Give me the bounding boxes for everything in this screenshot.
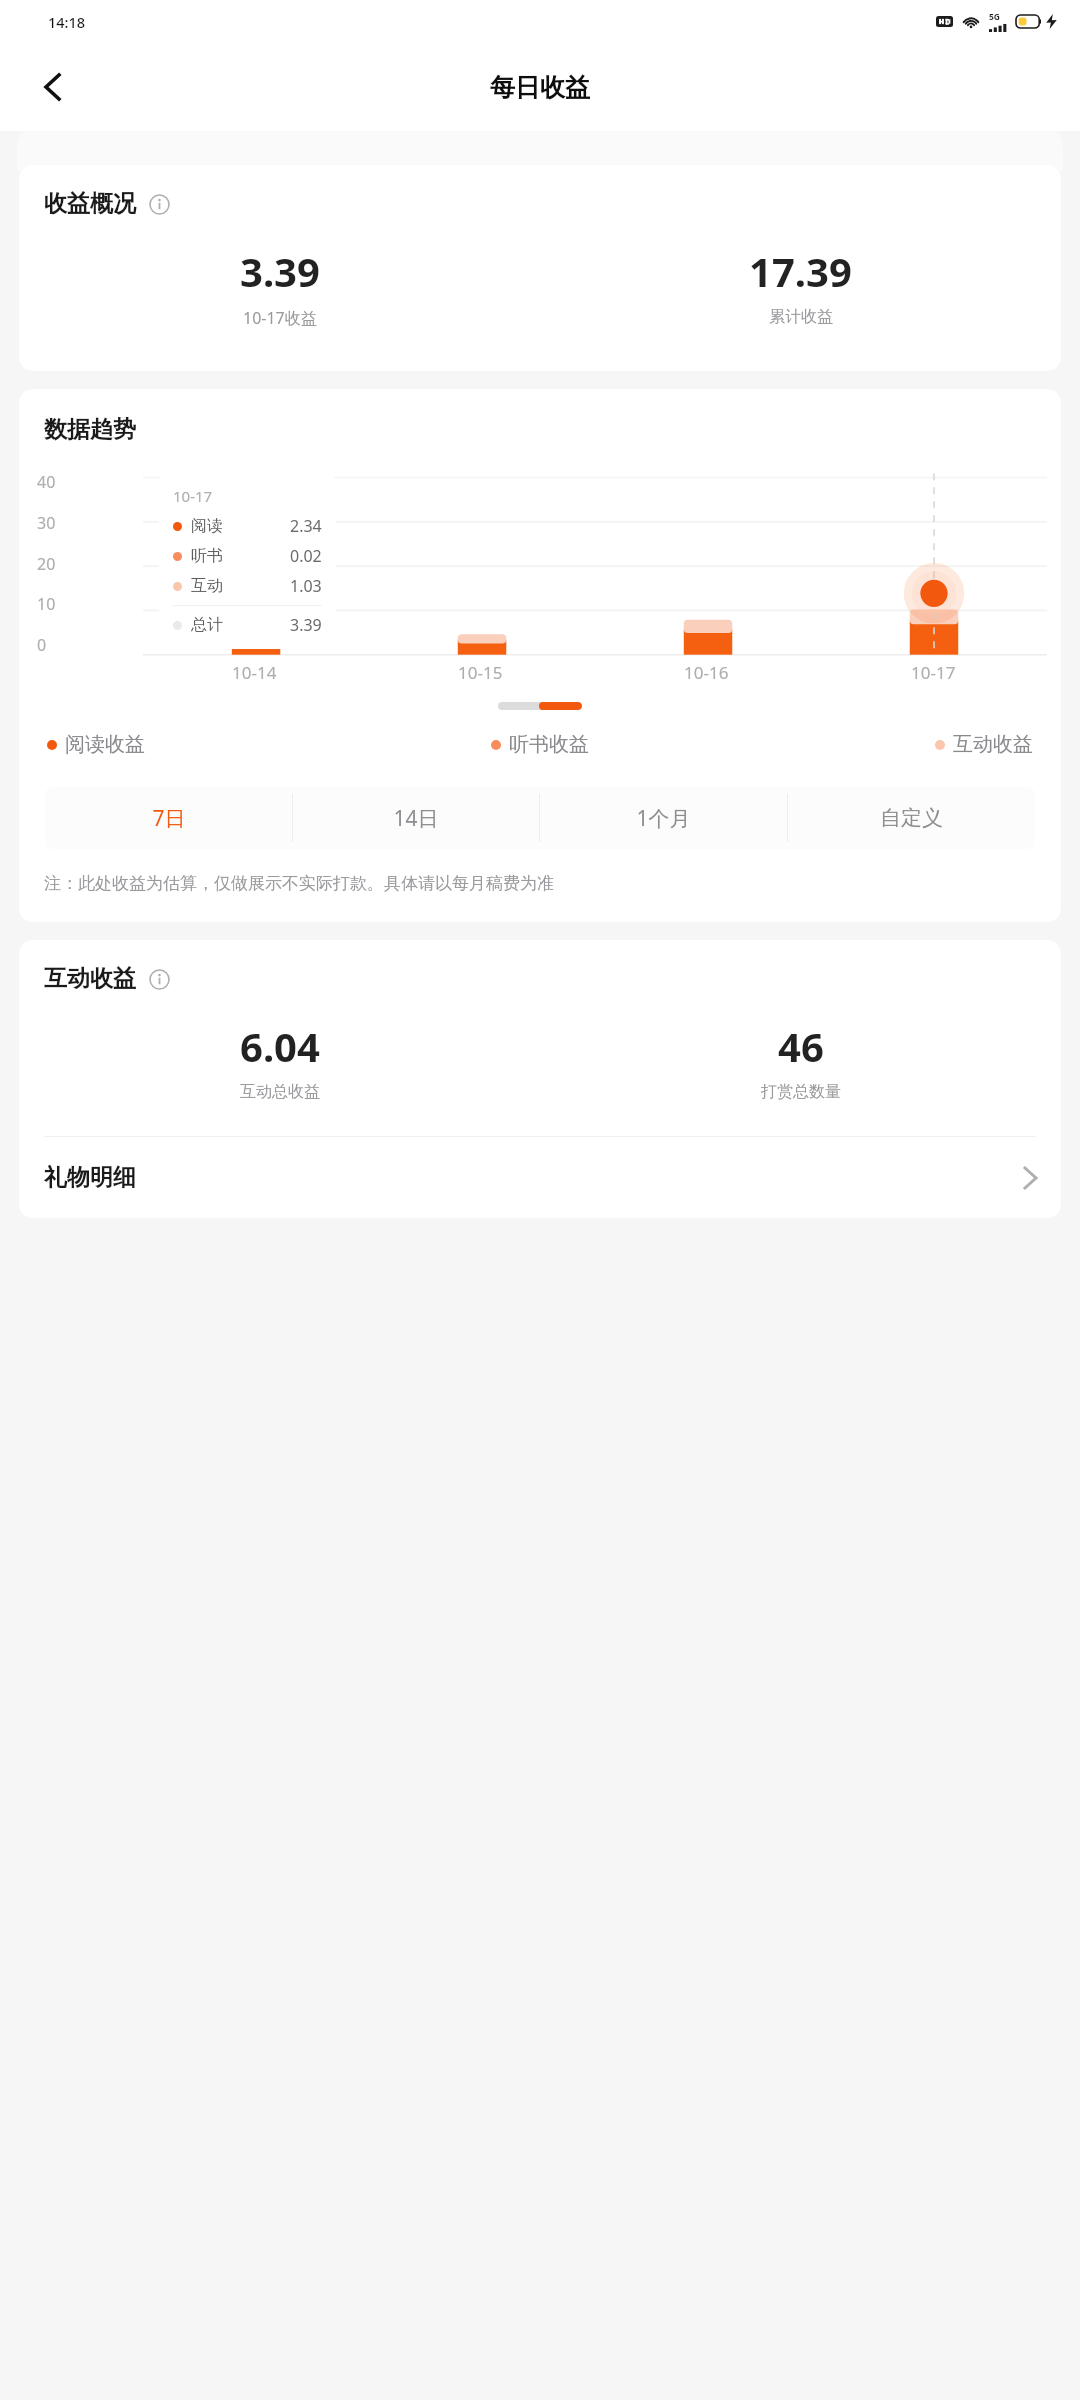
staticText: 互动收益: [44, 964, 136, 993]
staticText: 17.39: [749, 244, 852, 298]
staticText: 阅读: [191, 516, 223, 536]
staticText: 礼物明细: [44, 1163, 136, 1192]
staticText: 0.02: [290, 545, 322, 567]
staticText: 阅读收益: [65, 732, 145, 757]
staticText: 10-17: [911, 661, 956, 684]
button[interactable]: Info: [146, 191, 172, 217]
button[interactable]: Info: [146, 966, 172, 992]
button[interactable]: Back: [24, 59, 80, 115]
staticText: 互动: [191, 576, 223, 596]
staticText: 3.39: [290, 614, 322, 636]
staticText: 互动收益: [953, 732, 1033, 757]
staticText: 7日: [152, 804, 186, 833]
staticText: 累计收益: [769, 307, 833, 327]
button[interactable]: 7日: [45, 787, 292, 849]
staticText: 5G: [989, 11, 1001, 23]
staticText: 20: [37, 553, 56, 575]
button[interactable]: 14日: [292, 787, 539, 849]
staticText: 2.34: [290, 515, 322, 537]
staticText: 1个月: [636, 804, 691, 833]
staticText: 3.39: [240, 244, 320, 298]
staticText: 10-15: [458, 661, 503, 684]
staticText: 总计: [191, 615, 223, 635]
staticText: 注：此处收益为估算，仅做展示不实际打款。具体请以每月稿费为准: [44, 873, 554, 894]
button[interactable]: 自定义: [787, 787, 1035, 849]
staticText: 14:18: [48, 12, 86, 32]
staticText: 1.03: [290, 575, 322, 597]
staticText: 6.04: [240, 1019, 320, 1073]
staticText: 30: [37, 512, 56, 534]
staticText: 10-17: [173, 486, 213, 506]
staticText: 听书: [191, 546, 223, 566]
staticText: 10-14: [232, 661, 277, 684]
staticText: 收益概况: [44, 189, 136, 218]
staticText: 10-17收益: [243, 307, 317, 329]
staticText: 自定义: [880, 805, 943, 831]
staticText: 每日收益: [490, 72, 590, 103]
staticText: 46: [778, 1019, 824, 1073]
staticText: 打赏总数量: [761, 1082, 841, 1102]
staticText: 14日: [393, 804, 439, 833]
staticText: 10-16: [684, 661, 729, 684]
staticText: 40: [37, 471, 56, 493]
staticText: 听书收益: [509, 732, 589, 757]
staticText: 10: [37, 593, 56, 615]
staticText: 互动总收益: [240, 1082, 320, 1102]
staticText: 数据趋势: [44, 415, 136, 444]
button[interactable]: 1个月: [539, 787, 787, 849]
button[interactable]: 礼物明细: [19, 1137, 1061, 1218]
staticText: 0: [37, 634, 47, 656]
